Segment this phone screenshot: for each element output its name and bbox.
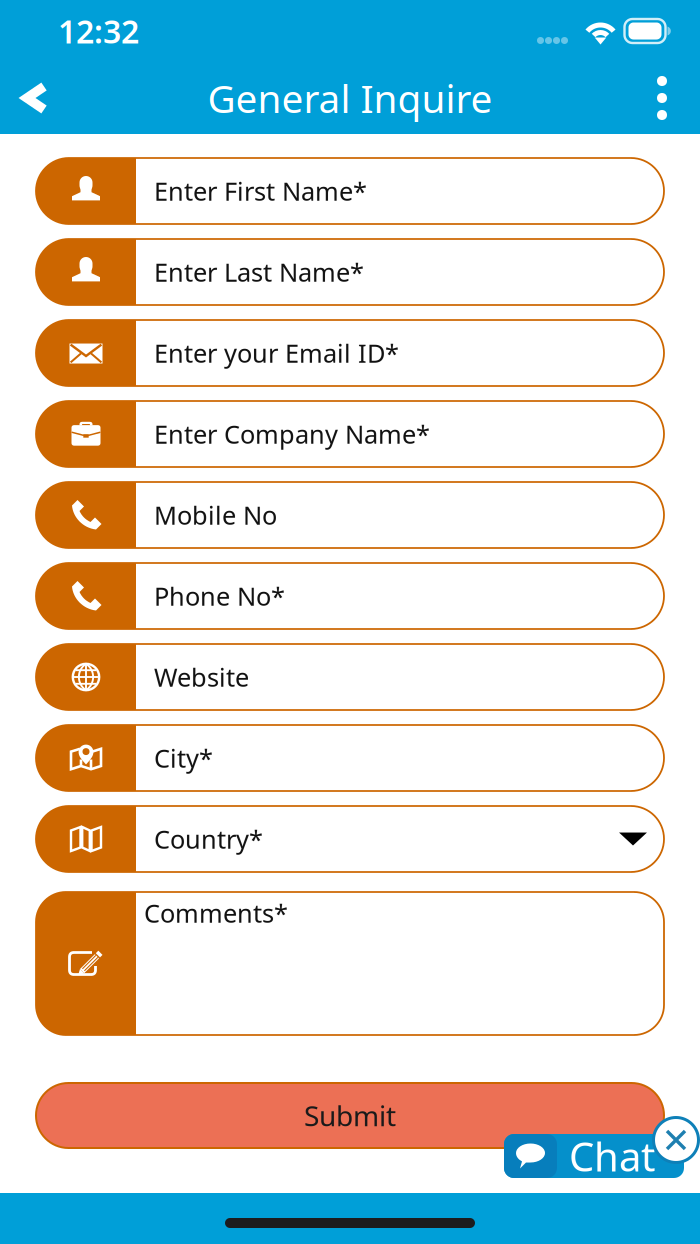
button[interactable]: Close chat	[652, 1116, 700, 1164]
button[interactable]: Website	[36, 644, 664, 710]
button[interactable]: More options	[622, 62, 700, 134]
staticText: Comments*	[144, 896, 288, 930]
button[interactable]: Comments*	[36, 892, 664, 1035]
button[interactable]: Phone No*	[36, 563, 664, 629]
staticText: Country*	[154, 822, 263, 856]
staticText: Mobile No	[154, 498, 277, 532]
staticText: Chat	[569, 1129, 655, 1182]
button[interactable]: Enter Last Name*	[36, 239, 664, 305]
button[interactable]: Enter Company Name*	[36, 401, 664, 467]
button[interactable]: Enter First Name*	[36, 158, 664, 224]
staticText: Submit	[304, 1097, 396, 1134]
button[interactable]: Chat	[504, 1134, 684, 1178]
button[interactable]: Mobile No	[36, 482, 664, 548]
staticText: Enter Last Name*	[154, 255, 364, 289]
staticText: Phone No*	[154, 579, 285, 613]
button[interactable]: Submit	[36, 1083, 664, 1148]
button[interactable]: Country*	[36, 806, 664, 872]
button[interactable]: Enter your Email ID*	[36, 320, 664, 386]
staticText: General Inquire	[207, 72, 492, 124]
staticText: 12:32	[58, 10, 139, 52]
button[interactable]: Back	[0, 62, 78, 134]
button[interactable]: City*	[36, 725, 664, 791]
staticText: Enter Company Name*	[154, 417, 430, 451]
staticText: Enter First Name*	[154, 174, 367, 208]
staticText: Enter your Email ID*	[154, 336, 399, 370]
staticText: Website	[154, 660, 249, 694]
staticText: City*	[154, 741, 213, 775]
